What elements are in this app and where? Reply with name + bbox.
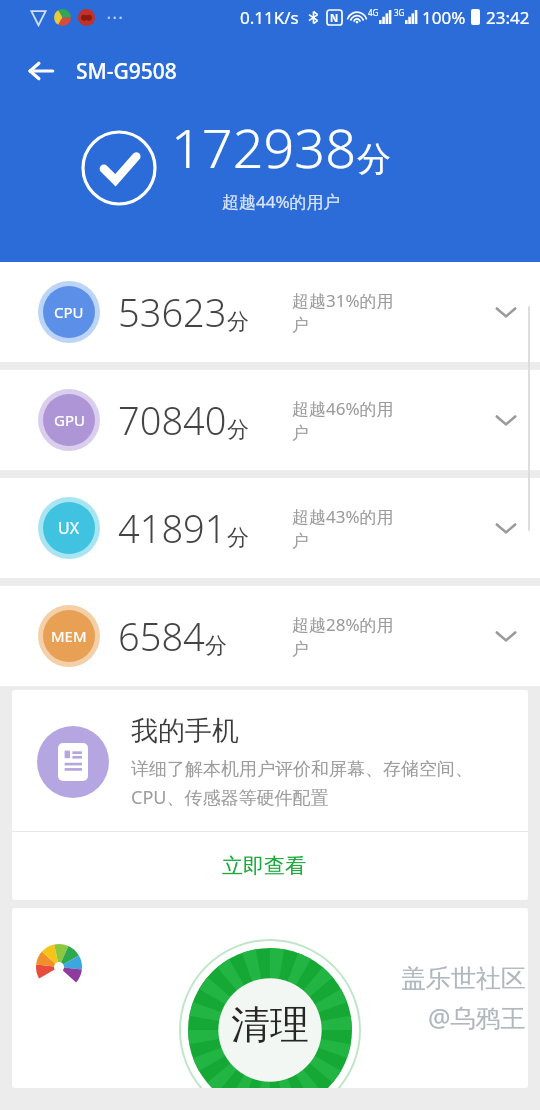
staticText: 0.11K/s [240, 6, 299, 29]
staticText: @乌鸦王 [428, 1000, 526, 1034]
staticText: MEM [51, 626, 87, 646]
staticText: ⋯ [106, 7, 123, 27]
staticText: 超越28%的用户 [292, 613, 404, 660]
staticText: UX [58, 517, 80, 539]
staticText: 41891 [118, 502, 227, 554]
staticText: SM-G9508 [76, 57, 177, 86]
button[interactable]: Expand UX [480, 502, 532, 554]
staticText: 立即查看 [222, 853, 306, 879]
button[interactable]: 清理 [12, 908, 528, 1088]
staticText: 分 [227, 416, 249, 444]
staticText: 100% [422, 6, 466, 29]
staticText: 23:42 [486, 6, 530, 29]
staticText: 53623 [118, 286, 227, 338]
staticText: 172938 [171, 110, 357, 184]
staticText: 分 [357, 138, 391, 181]
staticText: 70840 [118, 394, 227, 446]
staticText: 超越46%的用户 [292, 397, 404, 444]
button[interactable]: MEM [0, 586, 540, 686]
staticText: CPU [54, 302, 84, 322]
staticText: 超越43%的用户 [292, 505, 404, 552]
button[interactable]: 我的手机 [12, 690, 528, 900]
button[interactable]: 立即查看 [12, 832, 528, 900]
staticText: N [330, 11, 339, 25]
button[interactable]: Back [18, 48, 64, 94]
staticText: 分 [205, 632, 227, 660]
staticText: 6584 [118, 610, 205, 662]
staticText: 详细了解本机用户评价和屏幕、存储空间、CPU、传感器等硬件配置 [131, 758, 514, 809]
staticText: 超越31%的用户 [292, 289, 404, 336]
staticText: 3G [394, 7, 405, 18]
button[interactable]: GPU [0, 370, 540, 470]
button[interactable]: Expand GPU [480, 394, 532, 446]
staticText: 分 [227, 524, 249, 552]
button[interactable]: UX [0, 478, 540, 578]
button[interactable]: Expand CPU [480, 286, 532, 338]
staticText: 盖乐世社区 [401, 963, 526, 994]
staticText: 清理 [231, 1000, 309, 1049]
button[interactable]: CPU [0, 262, 540, 362]
staticText: 超越44%的用户 [222, 190, 341, 213]
button[interactable]: Expand MEM [480, 610, 532, 662]
staticText: 4G [368, 7, 379, 18]
staticText: GPU [54, 410, 85, 430]
staticText: 分 [227, 308, 249, 336]
staticText: 我的手机 [131, 714, 239, 748]
